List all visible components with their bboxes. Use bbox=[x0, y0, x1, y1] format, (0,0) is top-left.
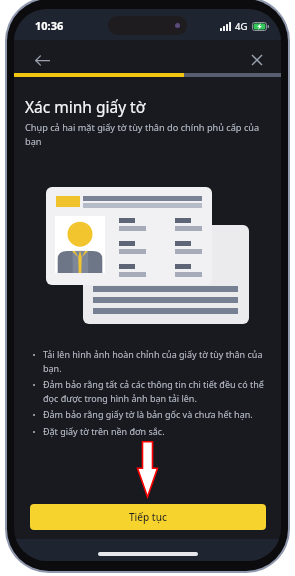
staticText: Chụp cả hai mặt giấy tờ tùy thân do chín… bbox=[25, 121, 271, 148]
button[interactable]: Close bbox=[242, 45, 272, 75]
button[interactable]: Back bbox=[27, 45, 57, 75]
staticText: Tải lên hình ảnh hoàn chỉnh của giấy tờ … bbox=[43, 348, 281, 375]
staticText: Tiếp tục bbox=[129, 510, 167, 524]
staticText: Đảm bảo rằng giấy tờ là bản gốc và chưa … bbox=[43, 408, 253, 420]
staticText: Đặt giấy tờ trên nền đơn sắc. bbox=[43, 425, 165, 437]
staticText: Đảm bảo rằng tất cả các thông tin chi ti… bbox=[43, 378, 281, 405]
staticText: 10:36 bbox=[35, 18, 64, 33]
button[interactable]: Tiếp tục bbox=[30, 504, 266, 530]
staticText: Xác minh giấy tờ bbox=[25, 96, 146, 117]
staticText: 4G bbox=[235, 20, 248, 33]
